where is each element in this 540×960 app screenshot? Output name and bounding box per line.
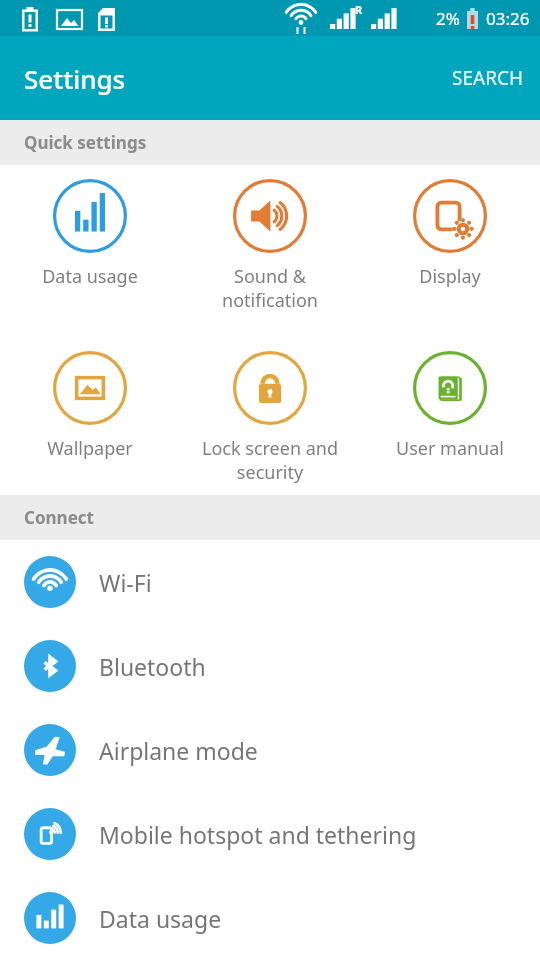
staticText: Data usage [99,903,222,934]
button[interactable]: Display [360,165,540,337]
staticText: Data usage [42,264,138,289]
staticText: Connect [24,506,94,529]
button[interactable]: Lock screen and security [180,337,360,495]
button[interactable]: Sound & notification [180,165,360,337]
button[interactable]: Mobile hotspot and tethering [0,792,540,876]
staticText: User manual [396,436,504,461]
staticText: Airplane mode [99,735,258,766]
staticText: Display [419,264,481,289]
button[interactable]: Data usage [0,876,540,960]
staticText: R [355,2,363,17]
staticText: SEARCH [452,65,524,91]
staticText: Sound & notification [222,264,318,312]
button[interactable]: User manual [360,337,540,495]
staticText: Bluetooth [99,651,206,682]
button[interactable]: Wi-Fi [0,540,540,624]
staticText: Settings [24,61,126,96]
staticText: Lock screen and security [202,436,338,484]
staticText: Wallpaper [47,436,133,461]
staticText: Wi-Fi [99,567,152,598]
button[interactable]: Bluetooth [0,624,540,708]
button[interactable]: Airplane mode [0,708,540,792]
staticText: Mobile hotspot and tethering [99,819,417,850]
button[interactable]: Wallpaper [0,337,180,495]
staticText: 2% [436,7,460,30]
button[interactable]: Data usage [0,165,180,337]
button[interactable]: SEARCH [436,49,540,107]
staticText: Quick settings [24,131,147,154]
staticText: 03:26 [486,7,530,30]
